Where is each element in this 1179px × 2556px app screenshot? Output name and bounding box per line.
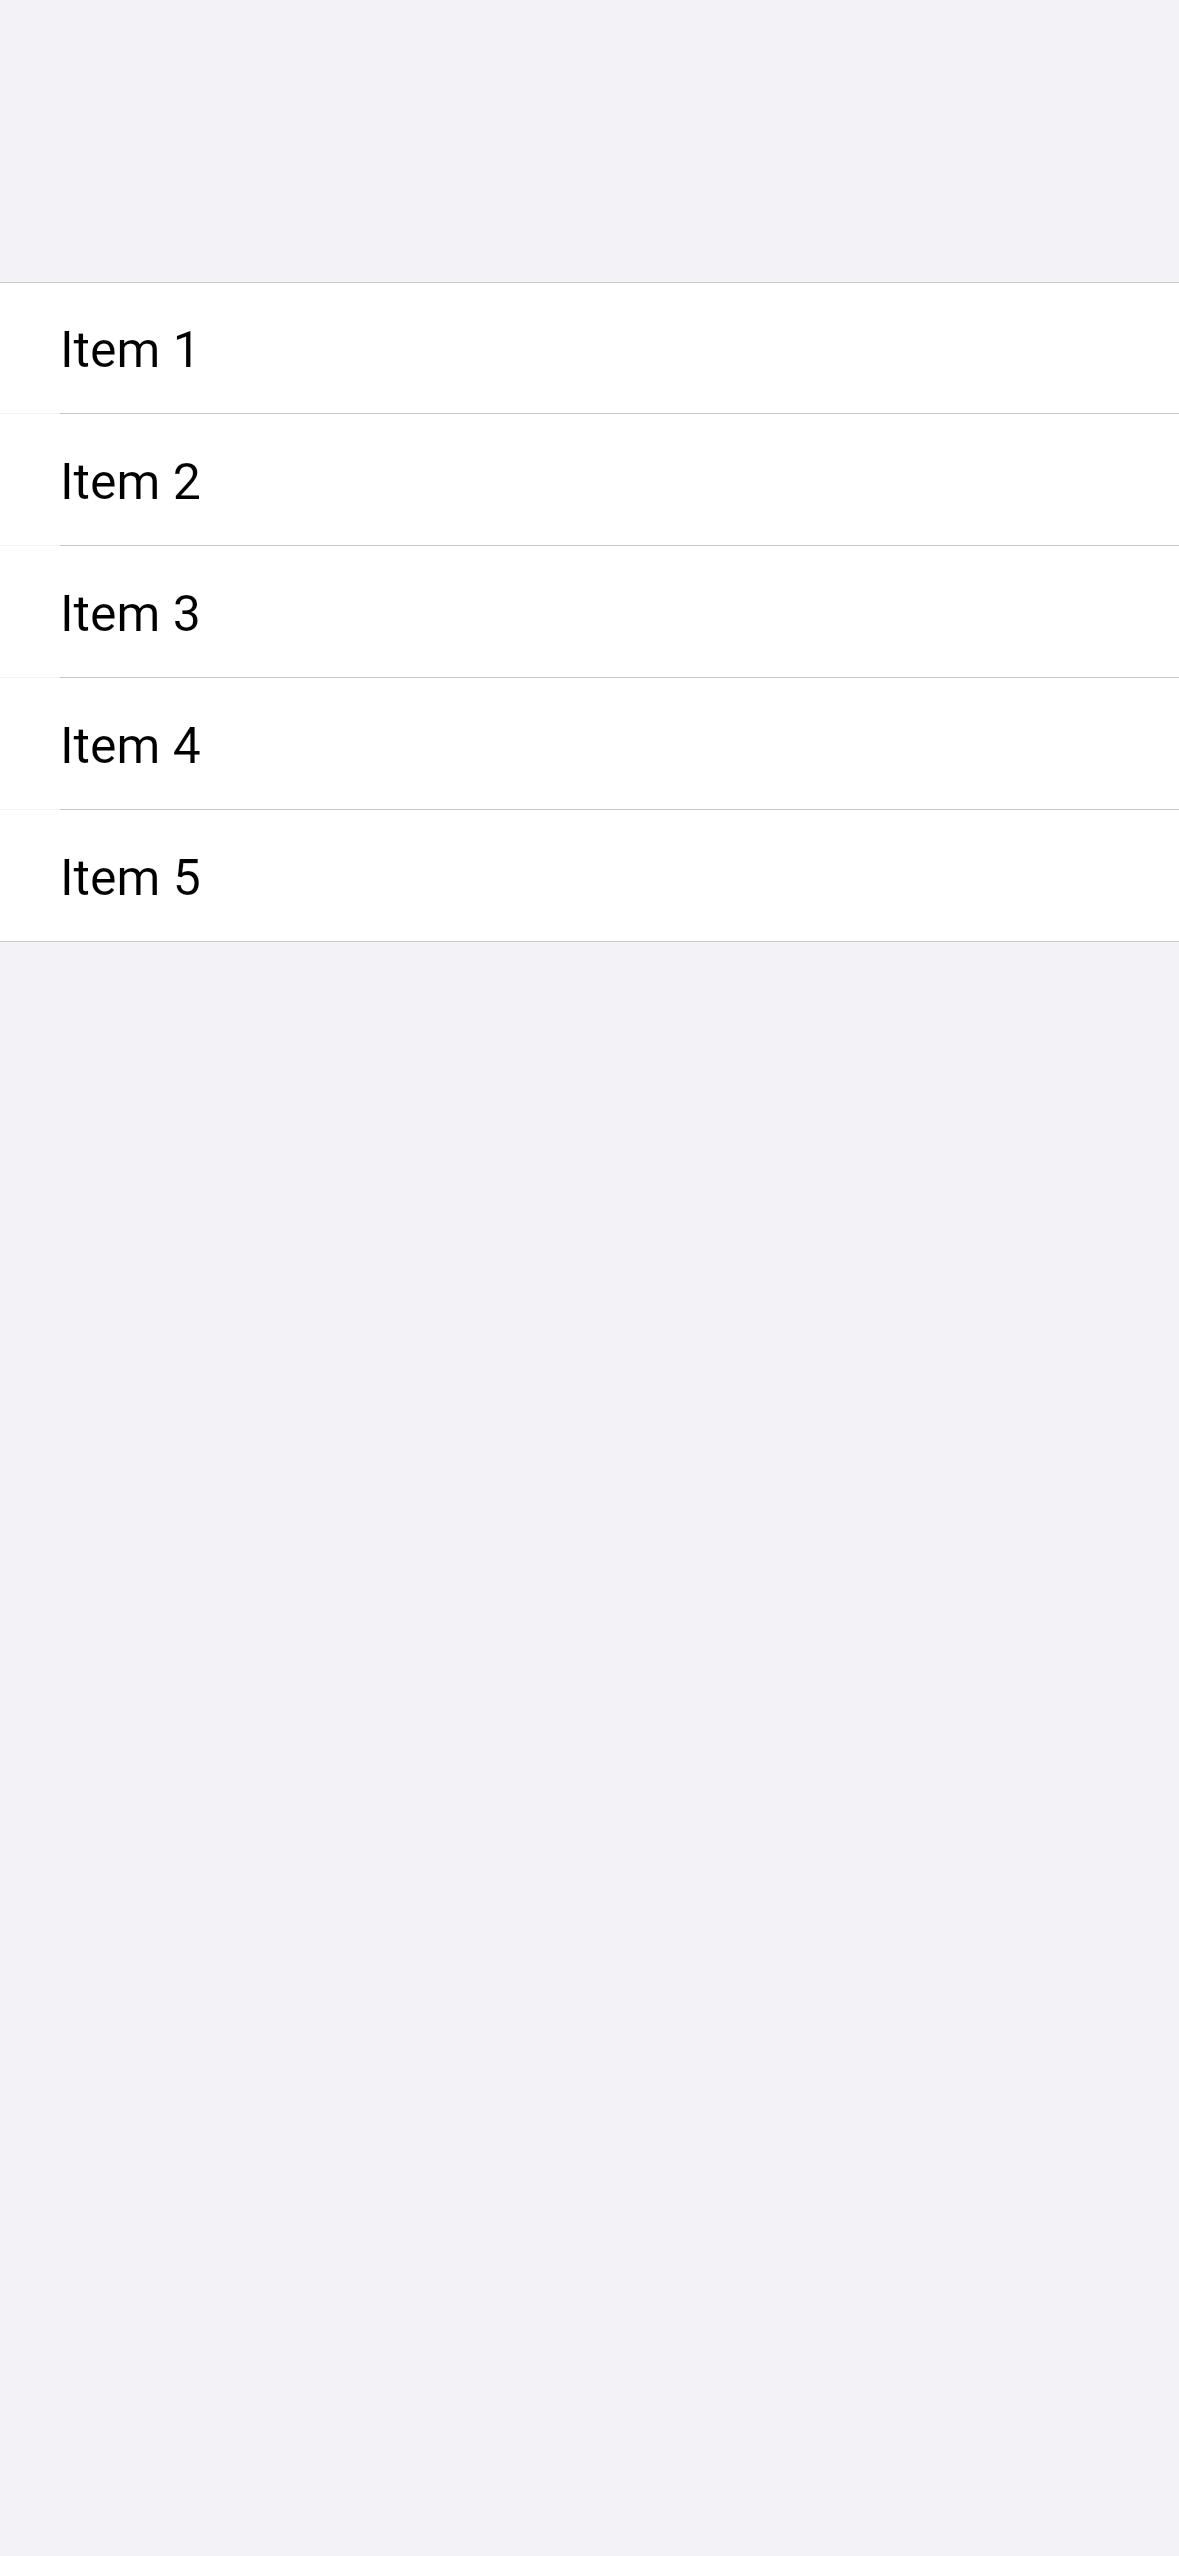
staticText: Item 2 xyxy=(60,453,201,512)
button[interactable]: Item 3 xyxy=(0,546,1179,677)
button[interactable]: Item 4 xyxy=(0,678,1179,809)
staticText: Item 5 xyxy=(60,849,201,908)
staticText: Item 4 xyxy=(60,717,201,776)
staticText: Item 3 xyxy=(60,585,201,644)
button[interactable]: Item 5 xyxy=(0,810,1179,941)
staticText: Item 1 xyxy=(60,321,201,380)
button[interactable]: Item 2 xyxy=(0,414,1179,545)
button[interactable]: Item 1 xyxy=(0,283,1179,413)
